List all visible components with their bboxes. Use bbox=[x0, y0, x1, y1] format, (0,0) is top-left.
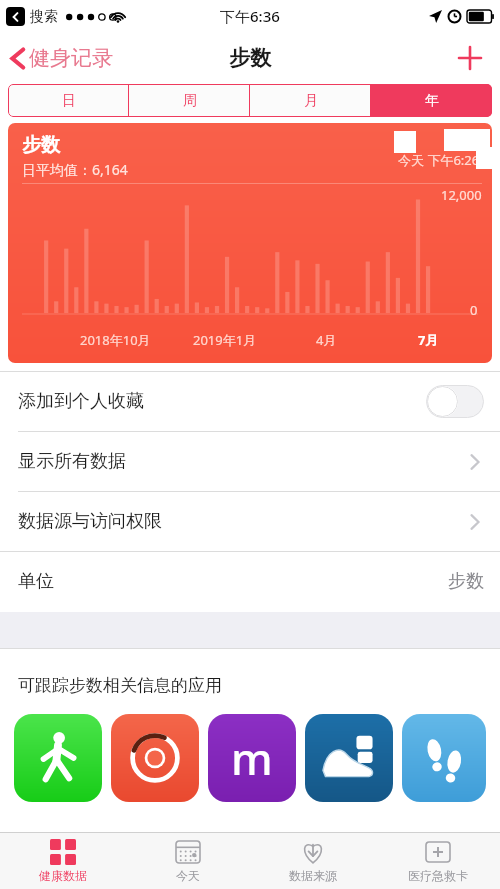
button[interactable]: Add bbox=[452, 40, 488, 76]
staticText: 显示所有数据 bbox=[18, 450, 126, 473]
button[interactable]: 健康数据 bbox=[0, 833, 125, 889]
staticText: 健身记录 bbox=[29, 45, 113, 71]
button[interactable]: 显示所有数据 bbox=[0, 432, 500, 491]
staticText: 12,000 bbox=[441, 186, 482, 204]
button[interactable]: 日 bbox=[8, 84, 129, 117]
staticText: 0 bbox=[470, 301, 478, 319]
staticText: 2018年10月 bbox=[80, 331, 151, 349]
button[interactable]: 健身记录 bbox=[10, 41, 121, 75]
staticText: 7月 bbox=[418, 331, 439, 349]
button[interactable]: App 3 bbox=[305, 714, 393, 802]
staticText: 4月 bbox=[316, 331, 337, 349]
staticText: 日 bbox=[62, 92, 76, 110]
staticText: 健康数据 bbox=[39, 868, 87, 883]
staticText: 数据来源 bbox=[289, 868, 337, 883]
button[interactable]: 数据来源 bbox=[250, 833, 375, 889]
staticText: 今天 下午6:26 bbox=[398, 151, 480, 169]
staticText: 年 bbox=[425, 92, 439, 110]
button[interactable]: App 1 bbox=[111, 714, 199, 802]
staticText: 添加到个人收藏 bbox=[18, 390, 144, 413]
staticText: 步数 bbox=[229, 45, 271, 71]
staticText: 数据源与访问权限 bbox=[18, 510, 162, 533]
staticText: 搜索 bbox=[30, 8, 58, 26]
button[interactable]: 添加到个人收藏 bbox=[0, 372, 500, 431]
staticText: 周 bbox=[183, 92, 197, 110]
staticText: 2019年1月 bbox=[193, 331, 257, 349]
button[interactable]: 医疗急救卡 bbox=[375, 833, 500, 889]
staticText: 医疗急救卡 bbox=[408, 868, 468, 883]
button[interactable]: App 0 bbox=[14, 714, 102, 802]
staticText: m bbox=[231, 728, 273, 788]
button[interactable]: App 2 bbox=[208, 714, 296, 802]
staticText: 下午6:36 bbox=[220, 6, 280, 26]
button[interactable]: 步数 bbox=[8, 123, 492, 363]
button[interactable]: 周 bbox=[129, 84, 250, 117]
staticText: 日平均值：6,164 bbox=[22, 160, 128, 179]
staticText: 步数 bbox=[448, 570, 484, 593]
staticText: 步数 bbox=[22, 133, 60, 157]
button[interactable]: 月 bbox=[250, 84, 371, 117]
staticText: 今天 bbox=[176, 868, 200, 883]
button[interactable]: 年 bbox=[371, 84, 492, 117]
button[interactable]: 今天 bbox=[125, 833, 250, 889]
staticText: 月 bbox=[304, 92, 318, 110]
button[interactable]: 数据源与访问权限 bbox=[0, 492, 500, 551]
button[interactable]: 单位 bbox=[0, 552, 500, 611]
button[interactable]: Add to favorites toggle bbox=[426, 385, 484, 418]
button[interactable]: App 4 bbox=[402, 714, 486, 802]
staticText: 单位 bbox=[18, 570, 54, 593]
staticText: 可跟踪步数相关信息的应用 bbox=[18, 675, 222, 696]
